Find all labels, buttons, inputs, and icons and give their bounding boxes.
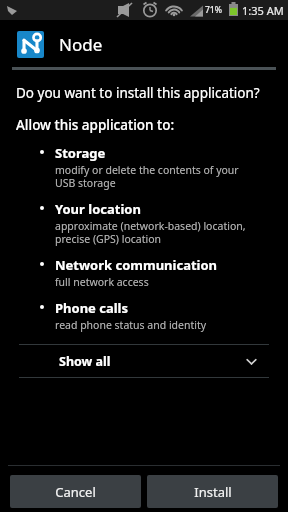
staticText: Network communication [55,256,218,274]
button[interactable]: Cancel [10,475,141,508]
staticText: Phone calls [55,299,129,317]
other: Expand [245,355,258,368]
staticText: 71% [205,4,222,16]
staticText: 1:35 AM [242,3,284,18]
staticText: Do you want to install this application? [16,84,260,102]
staticText: Storage [55,144,106,162]
staticText: modify or delete the contents of your US… [55,163,239,190]
staticText: full network access [55,275,149,289]
staticText: Your location [55,200,141,218]
staticText: Node [59,33,103,56]
staticText: approximate (network-based) location, pr… [55,219,246,246]
staticText: Install [194,483,232,501]
staticText: read phone status and identity [55,318,207,332]
staticText: Show all [59,353,111,370]
staticText: Cancel [55,483,96,501]
button[interactable]: Install [147,475,278,508]
button[interactable]: Show all [0,345,288,377]
staticText: Allow this application to: [16,116,175,134]
